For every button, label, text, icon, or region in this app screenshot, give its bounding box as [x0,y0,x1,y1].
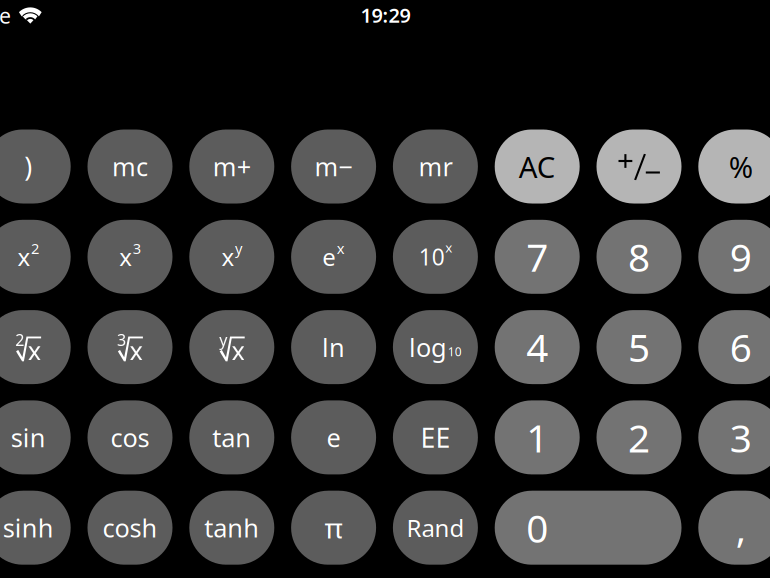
button[interactable]: y root of x [189,310,274,384]
button[interactable]: AC [495,129,580,203]
staticText: e [322,241,336,273]
staticText: mr [418,150,452,183]
button[interactable]: mc [87,129,172,203]
staticText: mc [112,150,148,183]
staticText: e [0,1,11,30]
staticText: 3 [117,329,126,350]
staticText: tan [212,421,251,454]
staticText: cos [110,421,149,454]
button[interactable]: mr [393,129,478,203]
staticText: y [235,238,242,258]
staticText: 1 [526,412,548,463]
staticText: x [28,334,41,367]
staticText: 19:29 [360,2,410,28]
staticText: x [17,241,30,273]
staticText: 10 [419,242,445,272]
staticText: tanh [204,511,259,544]
button[interactable]: 4 [495,310,580,384]
button[interactable]: log [393,310,478,384]
staticText: x [231,334,244,367]
button[interactable]: 5 [596,310,681,384]
button[interactable]: 2 root of x [0,310,71,384]
staticText: % [729,147,753,186]
button[interactable]: , [698,491,770,565]
staticText: 0 [526,502,548,553]
staticText: , [736,502,746,553]
button[interactable]: tan [189,400,274,474]
staticText: y [219,329,227,350]
staticText: 10 [448,343,462,359]
staticText: 4 [526,321,548,373]
button[interactable]: Rand [393,491,478,565]
button[interactable]: e [291,220,376,294]
staticText: m− [315,150,353,183]
staticText: x [221,241,234,273]
staticText: e [327,421,341,454]
button[interactable]: % [698,129,770,203]
button[interactable]: x [189,220,274,294]
button[interactable]: ln [291,310,376,384]
button[interactable]: 2 [596,400,681,474]
staticText: ) [24,149,32,184]
staticText: 2 [31,238,39,258]
staticText: cosh [102,511,157,544]
staticText: x [337,238,345,258]
button[interactable]: sin [0,400,71,474]
button[interactable]: plus minus [596,129,681,203]
button[interactable]: 9 [698,220,770,294]
button[interactable]: 6 [698,310,770,384]
staticText: Rand [406,512,464,544]
button[interactable]: 10 [393,220,478,294]
staticText: 9 [730,231,752,282]
button[interactable]: π [291,491,376,565]
staticText: m+ [213,150,251,183]
staticText: x [130,334,143,367]
staticText: x [445,238,452,256]
staticText: 3 [730,412,752,463]
staticText: 2 [628,412,650,463]
button[interactable]: 7 [495,220,580,294]
button[interactable]: tanh [189,491,274,565]
staticText: 8 [628,231,650,282]
staticText: x [119,241,132,273]
staticText: log [409,330,447,364]
staticText: ln [322,330,345,364]
button[interactable]: m+ [189,129,274,203]
button[interactable]: 1 [495,400,580,474]
button[interactable]: EE [393,400,478,474]
staticText: π [325,509,343,546]
staticText: 6 [730,321,752,373]
button[interactable]: x [87,220,172,294]
button[interactable]: ) [0,129,71,203]
staticText: AC [519,147,556,186]
staticText: 5 [628,321,650,373]
staticText: sin [11,421,46,454]
staticText: EE [420,420,450,455]
staticText: 3 [133,238,141,258]
button[interactable]: sinh [0,491,71,565]
button[interactable]: x [0,220,71,294]
button[interactable]: 3 [698,400,770,474]
button[interactable]: cosh [87,491,172,565]
staticText: sinh [3,511,54,544]
staticText: 2 [15,329,24,350]
button[interactable]: 8 [596,220,681,294]
button[interactable]: e [291,400,376,474]
button[interactable]: m− [291,129,376,203]
button[interactable]: cos [87,400,172,474]
button[interactable]: 0 [495,491,681,565]
button[interactable]: 3 root of x [87,310,172,384]
staticText: 7 [526,231,548,282]
